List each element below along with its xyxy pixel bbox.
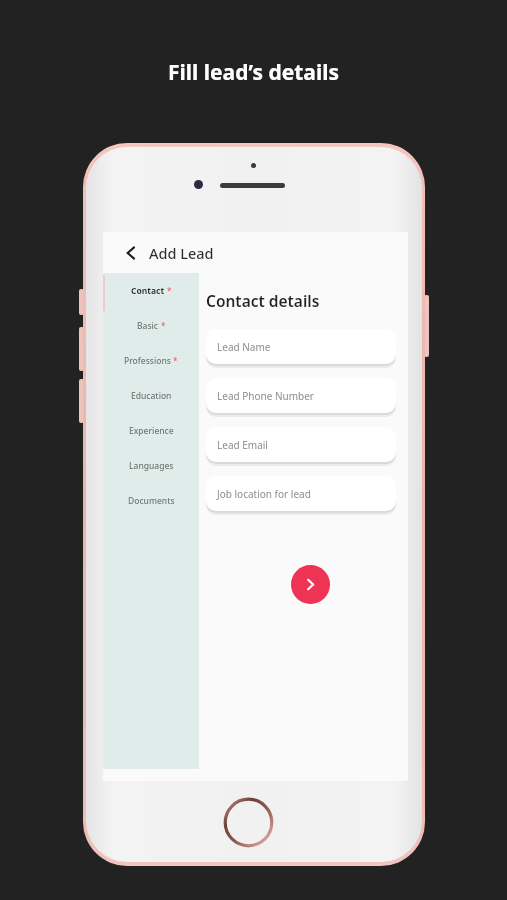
button[interactable]: Experience [103, 413, 199, 448]
button[interactable]: Contact [103, 273, 199, 308]
button[interactable]: Lead Name [206, 329, 396, 364]
staticText: Job location for lead [217, 487, 311, 501]
staticText: Education [131, 390, 172, 402]
button[interactable]: Documents [103, 483, 199, 518]
button[interactable]: Education [103, 378, 199, 413]
staticText: Professions [124, 355, 171, 367]
staticText: Languages [129, 460, 174, 472]
staticText: Documents [128, 495, 175, 507]
button[interactable]: Languages [103, 448, 199, 483]
button[interactable]: Next [291, 565, 330, 604]
button[interactable]: Job location for lead [206, 476, 396, 511]
staticText: Contact [131, 285, 165, 297]
staticText: Contact details [206, 290, 320, 311]
staticText: Experience [129, 425, 174, 437]
staticText: Basic [137, 320, 159, 332]
button[interactable]: Lead Email [206, 427, 396, 462]
other: Back [121, 243, 141, 263]
staticText: Add Lead [149, 243, 214, 263]
button[interactable]: Back [103, 232, 408, 273]
staticText: Lead Name [217, 340, 271, 354]
staticText: Lead Phone Number [217, 389, 314, 403]
button[interactable]: Basic [103, 308, 199, 343]
staticText: * [173, 355, 178, 366]
staticText: * [161, 320, 166, 331]
staticText: Fill lead’s details [168, 58, 339, 87]
staticText: Lead Email [217, 438, 268, 452]
button[interactable]: Lead Phone Number [206, 378, 396, 413]
staticText: * [167, 285, 172, 296]
button[interactable]: Professions [103, 343, 199, 378]
